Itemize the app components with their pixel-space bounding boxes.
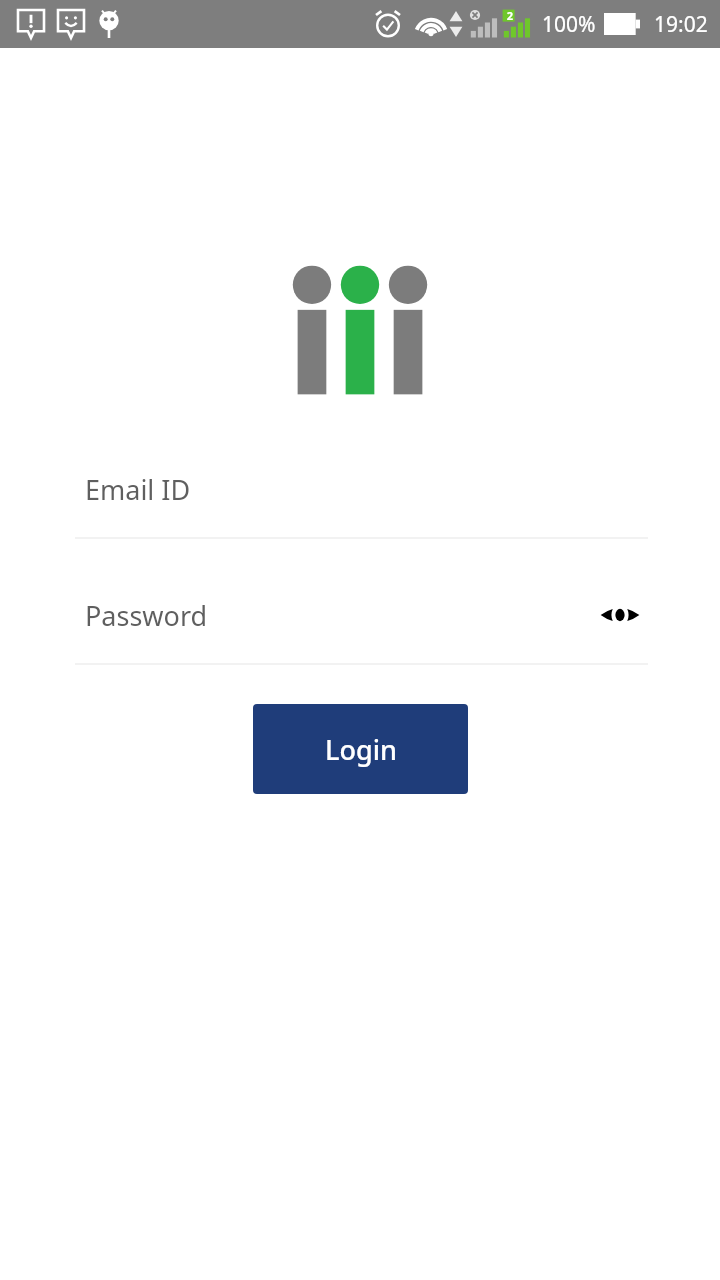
staticText: 2 [504, 8, 516, 21]
staticText: 19:02 [654, 10, 708, 39]
button[interactable]: Password [0, 586, 720, 644]
button[interactable]: Show password [598, 593, 642, 637]
staticText: Login [325, 731, 397, 768]
button[interactable]: Login [253, 704, 468, 794]
staticText: Password [85, 597, 208, 634]
button[interactable]: Email ID [0, 460, 720, 518]
staticText: 100% [542, 10, 596, 39]
staticText: Email ID [85, 471, 191, 508]
